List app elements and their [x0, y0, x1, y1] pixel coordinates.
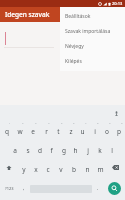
- button[interactable]: a: [9, 139, 21, 158]
- button[interactable]: Voice input: [112, 109, 120, 117]
- staticText: r: [45, 127, 48, 136]
- staticText: Idegen szavak: [5, 10, 50, 19]
- staticText: y: [22, 165, 26, 174]
- staticText: .: [97, 185, 99, 192]
- staticText: s: [26, 146, 30, 155]
- staticText: 7: [85, 121, 87, 124]
- button[interactable]: j: [82, 139, 93, 158]
- staticText: Szavak importálása: [65, 28, 111, 35]
- staticText: j: [87, 146, 89, 155]
- staticText: i: [94, 127, 96, 136]
- button[interactable]: g: [58, 139, 69, 158]
- staticText: o: [105, 127, 109, 136]
- staticText: v: [59, 165, 63, 174]
- button[interactable]: Szavak importálása: [60, 24, 125, 39]
- staticText: a: [13, 146, 17, 155]
- button[interactable]: f: [46, 139, 57, 158]
- staticText: ?123: [5, 186, 14, 191]
- staticText: c: [46, 165, 50, 174]
- staticText: 9: [109, 121, 111, 124]
- staticText: l: [111, 146, 113, 155]
- staticText: f: [50, 146, 53, 155]
- staticText: x: [34, 165, 38, 174]
- staticText: 8: [97, 121, 99, 124]
- button[interactable]: d: [34, 139, 45, 158]
- staticText: n: [85, 165, 90, 174]
- staticText: ,: [23, 185, 25, 192]
- button[interactable]: 1: [1, 120, 13, 139]
- staticText: t: [57, 127, 60, 136]
- button[interactable]: .: [93, 177, 103, 200]
- button[interactable]: c: [42, 158, 54, 177]
- staticText: 6: [73, 121, 75, 124]
- button[interactable]: Kilépés: [60, 54, 125, 69]
- staticText: u: [80, 127, 85, 136]
- staticText: Kilépés: [65, 58, 82, 65]
- button[interactable]: Search: [108, 182, 121, 195]
- staticText: 4: [48, 121, 50, 124]
- staticText: 2: [22, 121, 24, 124]
- staticText: w: [17, 127, 23, 136]
- button[interactable]: 6: [65, 120, 76, 139]
- button[interactable]: 7: [77, 120, 88, 139]
- button[interactable]: 3: [27, 120, 39, 139]
- button[interactable]: 9: [101, 120, 112, 139]
- button[interactable]: ,: [19, 177, 29, 200]
- button[interactable]: Névjegy: [60, 39, 125, 54]
- staticText: z: [69, 127, 73, 136]
- button[interactable]: y: [18, 158, 29, 177]
- button[interactable]: m: [94, 158, 106, 177]
- button[interactable]: ?123: [1, 177, 18, 200]
- button[interactable]: [4, 30, 54, 48]
- button[interactable]: 0: [113, 120, 124, 139]
- button[interactable]: k: [94, 139, 105, 158]
- button[interactable]: b: [68, 158, 80, 177]
- staticText: k: [98, 146, 102, 155]
- button[interactable]: 5: [53, 120, 64, 139]
- staticText: 3: [35, 121, 37, 124]
- button[interactable]: Shift: [1, 158, 17, 177]
- staticText: 20:13: [112, 1, 123, 6]
- button[interactable]: Beállítások: [60, 9, 125, 24]
- button[interactable]: 8: [89, 120, 100, 139]
- staticText: p: [117, 127, 121, 136]
- staticText: 5: [61, 121, 63, 124]
- staticText: Beállítások: [65, 13, 91, 20]
- staticText: Névjegy: [65, 43, 84, 50]
- button[interactable]: v: [55, 158, 67, 177]
- staticText: b: [72, 165, 76, 174]
- button[interactable]: Delete: [107, 158, 124, 177]
- staticText: 1: [9, 121, 11, 124]
- staticText: 0: [121, 121, 123, 124]
- button[interactable]: x: [30, 158, 41, 177]
- staticText: m: [97, 165, 104, 174]
- staticText: h: [73, 146, 78, 155]
- button[interactable]: s: [22, 139, 33, 158]
- staticText: g: [62, 146, 66, 155]
- button[interactable]: n: [81, 158, 93, 177]
- staticText: e: [31, 127, 35, 136]
- button[interactable]: 4: [40, 120, 52, 139]
- staticText: d: [38, 146, 42, 155]
- button[interactable]: l: [106, 139, 117, 158]
- staticText: q: [5, 127, 9, 136]
- button[interactable]: h: [70, 139, 81, 158]
- button[interactable]: 2: [14, 120, 26, 139]
